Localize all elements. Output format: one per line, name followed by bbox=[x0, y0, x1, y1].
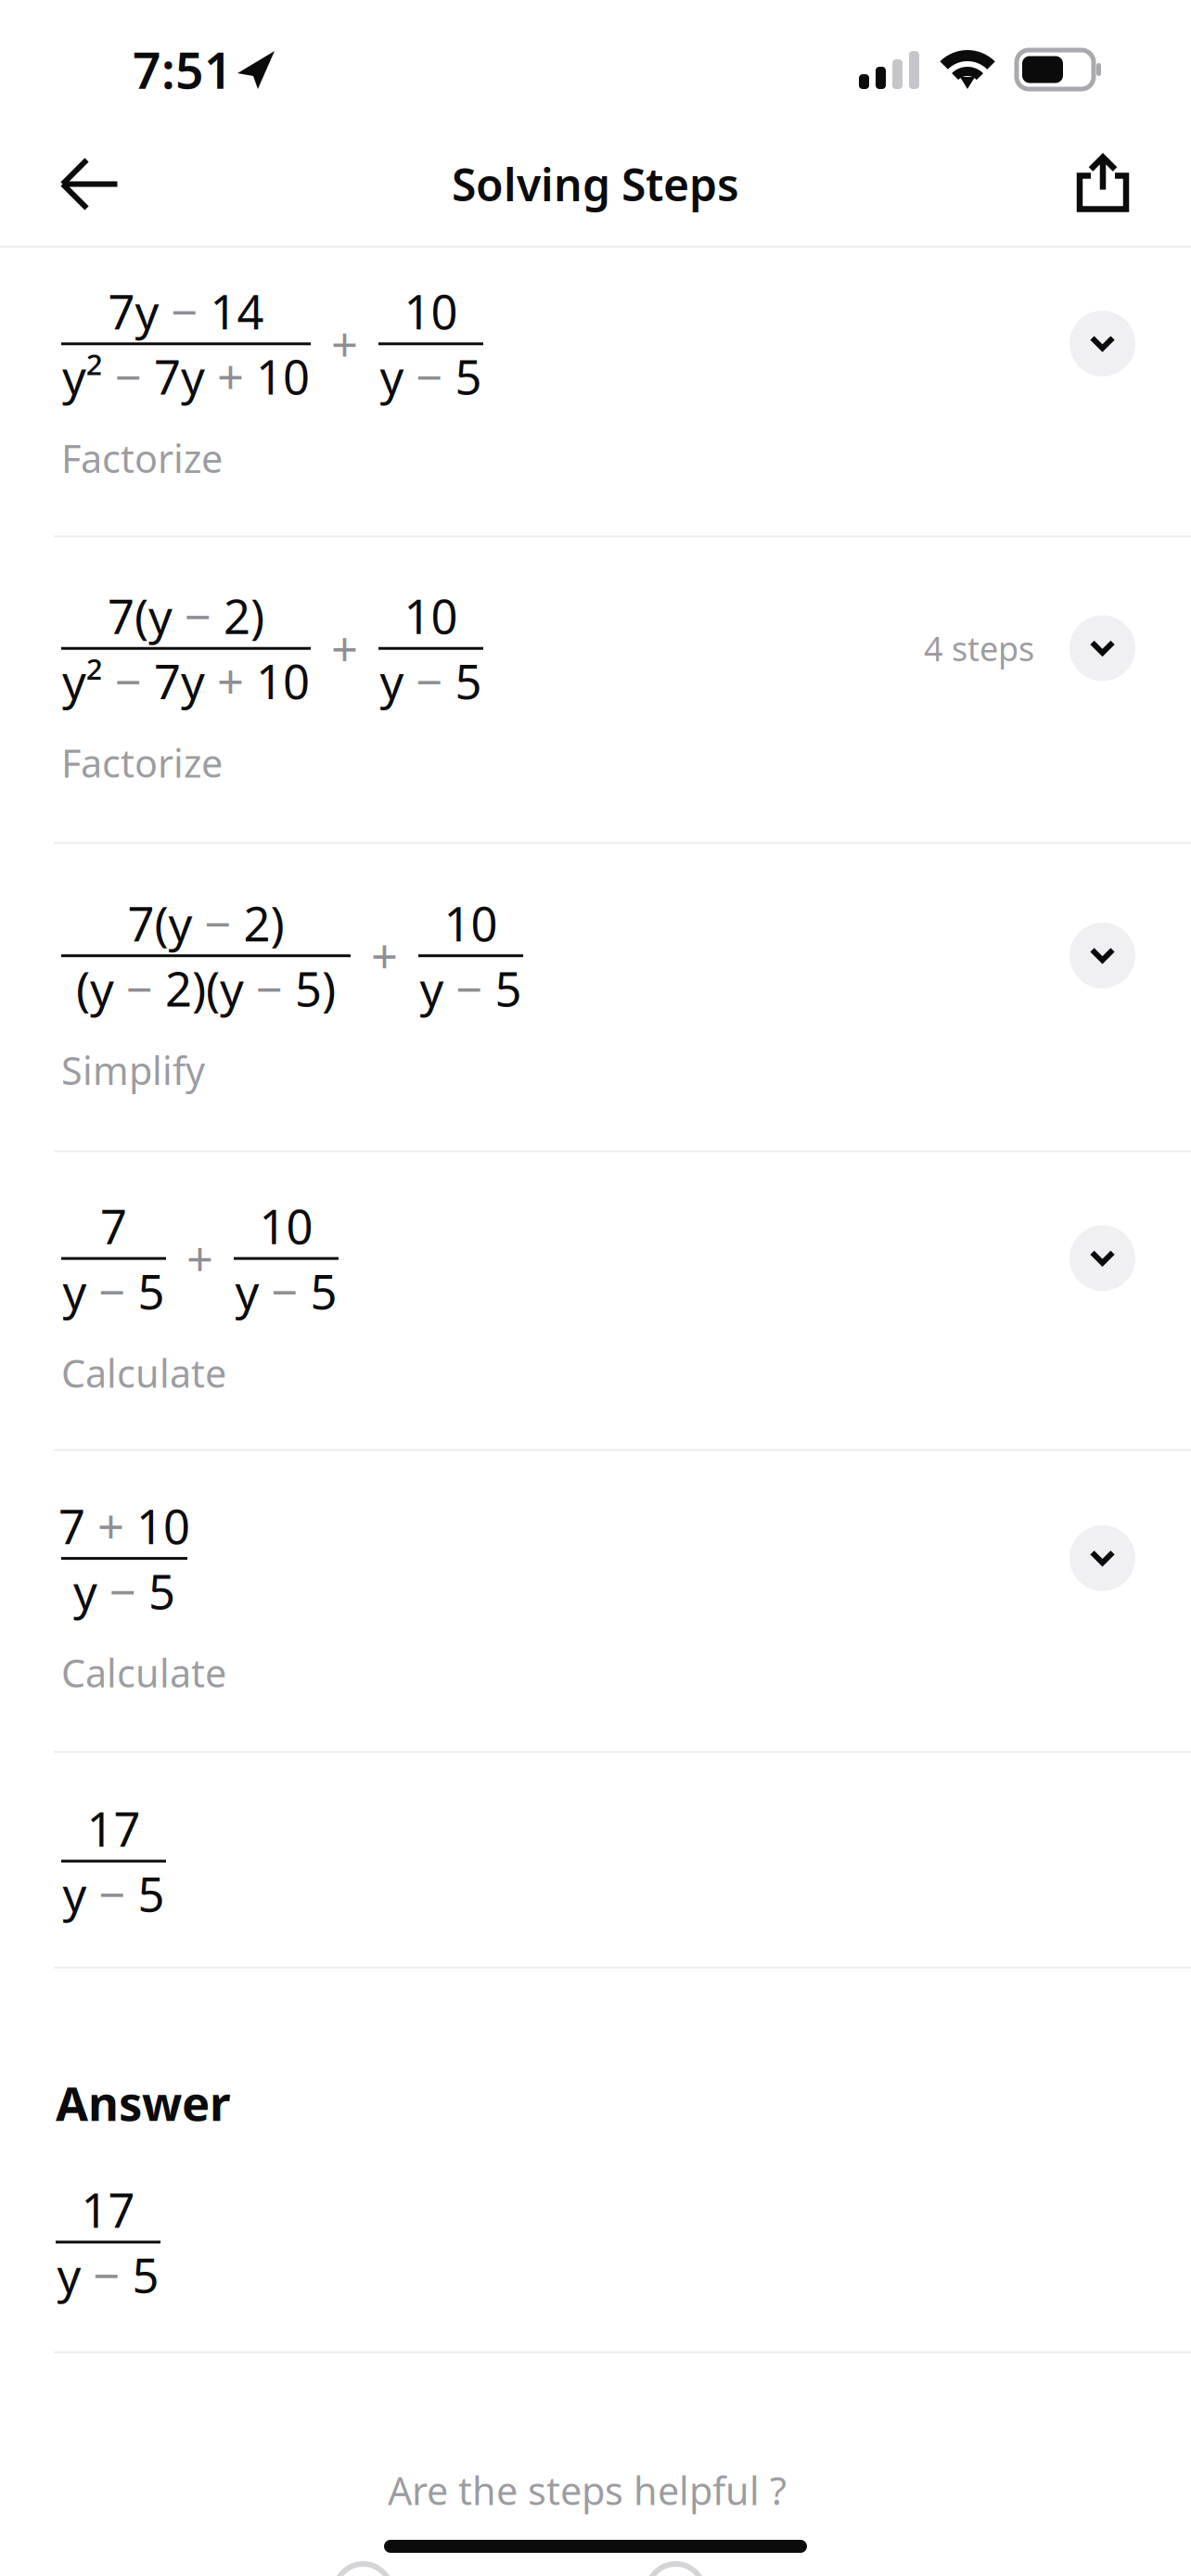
staticText: 5 bbox=[310, 1260, 337, 1322]
staticText: − bbox=[99, 1863, 138, 1925]
staticText: 4 steps bbox=[924, 626, 1034, 670]
staticText: − bbox=[271, 1260, 310, 1322]
staticText: Calculate bbox=[61, 1647, 226, 1698]
staticText: Calculate bbox=[61, 1347, 226, 1398]
staticText: 7y bbox=[108, 280, 171, 342]
staticText: 10 bbox=[444, 892, 498, 954]
staticText: − bbox=[185, 585, 224, 647]
button[interactable]: Back bbox=[39, 133, 141, 235]
staticText: 5 bbox=[138, 1260, 165, 1322]
staticText: Are the steps helpful ? bbox=[388, 2465, 787, 2516]
staticText: + bbox=[186, 1227, 213, 1290]
staticText: + bbox=[371, 925, 398, 987]
staticText: 7y bbox=[154, 345, 217, 408]
staticText: − bbox=[126, 957, 165, 1020]
staticText: − bbox=[171, 280, 210, 342]
staticText: y bbox=[380, 345, 416, 408]
staticText: y² bbox=[62, 650, 115, 712]
staticText: 10 bbox=[404, 280, 458, 342]
staticText: 5) bbox=[295, 957, 336, 1020]
staticText: 7y bbox=[154, 650, 217, 712]
staticText: y bbox=[420, 957, 456, 1020]
staticText: 7 bbox=[58, 1495, 97, 1557]
button[interactable]: 17 bbox=[0, 1753, 1191, 1969]
staticText: Answer bbox=[56, 2071, 231, 2134]
staticText: 7 bbox=[100, 1195, 127, 1257]
staticText: 10 bbox=[404, 585, 458, 647]
staticText: − bbox=[115, 345, 154, 408]
staticText: + bbox=[217, 345, 256, 408]
button[interactable]: 7 bbox=[0, 1451, 1191, 1753]
staticText: − bbox=[99, 1260, 138, 1322]
staticText: 10 bbox=[136, 1495, 190, 1557]
staticText: − bbox=[205, 892, 243, 954]
staticText: (y bbox=[76, 957, 126, 1020]
staticText: 17 bbox=[87, 1797, 141, 1860]
button[interactable]: 7(y bbox=[0, 844, 1191, 1152]
staticText: 5 bbox=[495, 957, 522, 1020]
button[interactable]: 7(y bbox=[0, 537, 1191, 844]
staticText: 17 bbox=[81, 2178, 135, 2241]
staticText: 14 bbox=[210, 280, 264, 342]
staticText: Factorize bbox=[61, 737, 223, 788]
button[interactable]: 7y bbox=[0, 248, 1191, 537]
staticText: 7:51 bbox=[133, 37, 233, 102]
staticText: + bbox=[97, 1495, 136, 1557]
staticText: + bbox=[331, 313, 358, 375]
staticText: y bbox=[235, 1260, 271, 1322]
staticText: 2) bbox=[224, 585, 264, 647]
staticText: 7(y bbox=[128, 892, 205, 954]
staticText: y bbox=[63, 1863, 99, 1925]
staticText: + bbox=[217, 650, 256, 712]
staticText: + bbox=[331, 617, 358, 680]
button[interactable]: Share bbox=[1054, 133, 1156, 235]
staticText: 5 bbox=[148, 1560, 175, 1622]
staticText: 10 bbox=[256, 345, 310, 408]
staticText: Factorize bbox=[61, 433, 223, 484]
staticText: − bbox=[93, 2243, 132, 2306]
staticText: 2) bbox=[243, 892, 284, 954]
staticText: y² bbox=[62, 345, 115, 408]
staticText: y bbox=[73, 1560, 109, 1622]
staticText: − bbox=[416, 650, 455, 712]
staticText: − bbox=[416, 345, 455, 408]
staticText: y bbox=[63, 1260, 99, 1322]
button[interactable]: 7 bbox=[0, 1152, 1191, 1451]
staticText: 5 bbox=[138, 1863, 165, 1925]
staticText: y bbox=[380, 650, 416, 712]
staticText: 10 bbox=[259, 1195, 313, 1257]
staticText: 7(y bbox=[108, 585, 185, 647]
staticText: Solving Steps bbox=[452, 154, 739, 214]
staticText: 5 bbox=[455, 650, 482, 712]
staticText: − bbox=[109, 1560, 148, 1622]
staticText: Simplify bbox=[61, 1045, 205, 1095]
staticText: − bbox=[115, 650, 154, 712]
staticText: y bbox=[57, 2243, 93, 2306]
button[interactable]: Are the steps helpful ? bbox=[388, 2465, 803, 2516]
staticText: 10 bbox=[256, 650, 310, 712]
staticText: 5 bbox=[455, 345, 482, 408]
staticText: − bbox=[456, 957, 495, 1020]
staticText: 2)(y bbox=[165, 957, 256, 1020]
staticText: − bbox=[256, 957, 295, 1020]
staticText: 5 bbox=[132, 2243, 159, 2306]
